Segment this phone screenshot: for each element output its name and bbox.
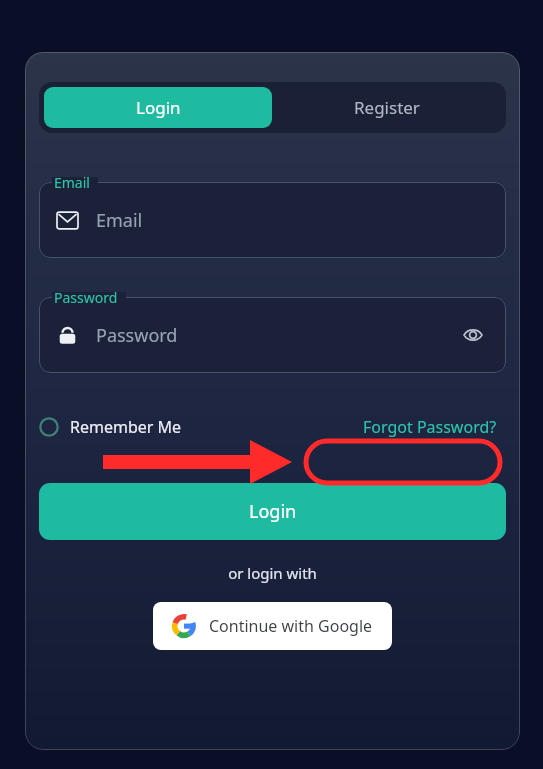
staticText: Forgot Password?: [363, 416, 497, 438]
button[interactable]: Continue with Google: [153, 602, 392, 650]
staticText: Login: [136, 96, 181, 119]
staticText: Password: [54, 288, 118, 307]
staticText: Email: [54, 173, 90, 192]
staticText: Remember Me: [70, 416, 182, 438]
button[interactable]: Login: [39, 483, 506, 540]
staticText: Login: [249, 499, 297, 524]
staticText: or login with: [25, 563, 520, 583]
button[interactable]: Password: [39, 297, 506, 373]
button[interactable]: Email: [39, 182, 506, 258]
button[interactable]: Show password: [458, 320, 488, 350]
button[interactable]: Register: [272, 87, 501, 128]
staticText: Email: [96, 208, 143, 233]
button[interactable]: Forgot Password?: [354, 409, 506, 445]
button[interactable]: Remember Me: [39, 416, 182, 438]
button[interactable]: Login: [44, 87, 272, 128]
staticText: Continue with Google: [209, 615, 373, 637]
staticText: Password: [96, 323, 178, 348]
staticText: Register: [354, 96, 420, 119]
